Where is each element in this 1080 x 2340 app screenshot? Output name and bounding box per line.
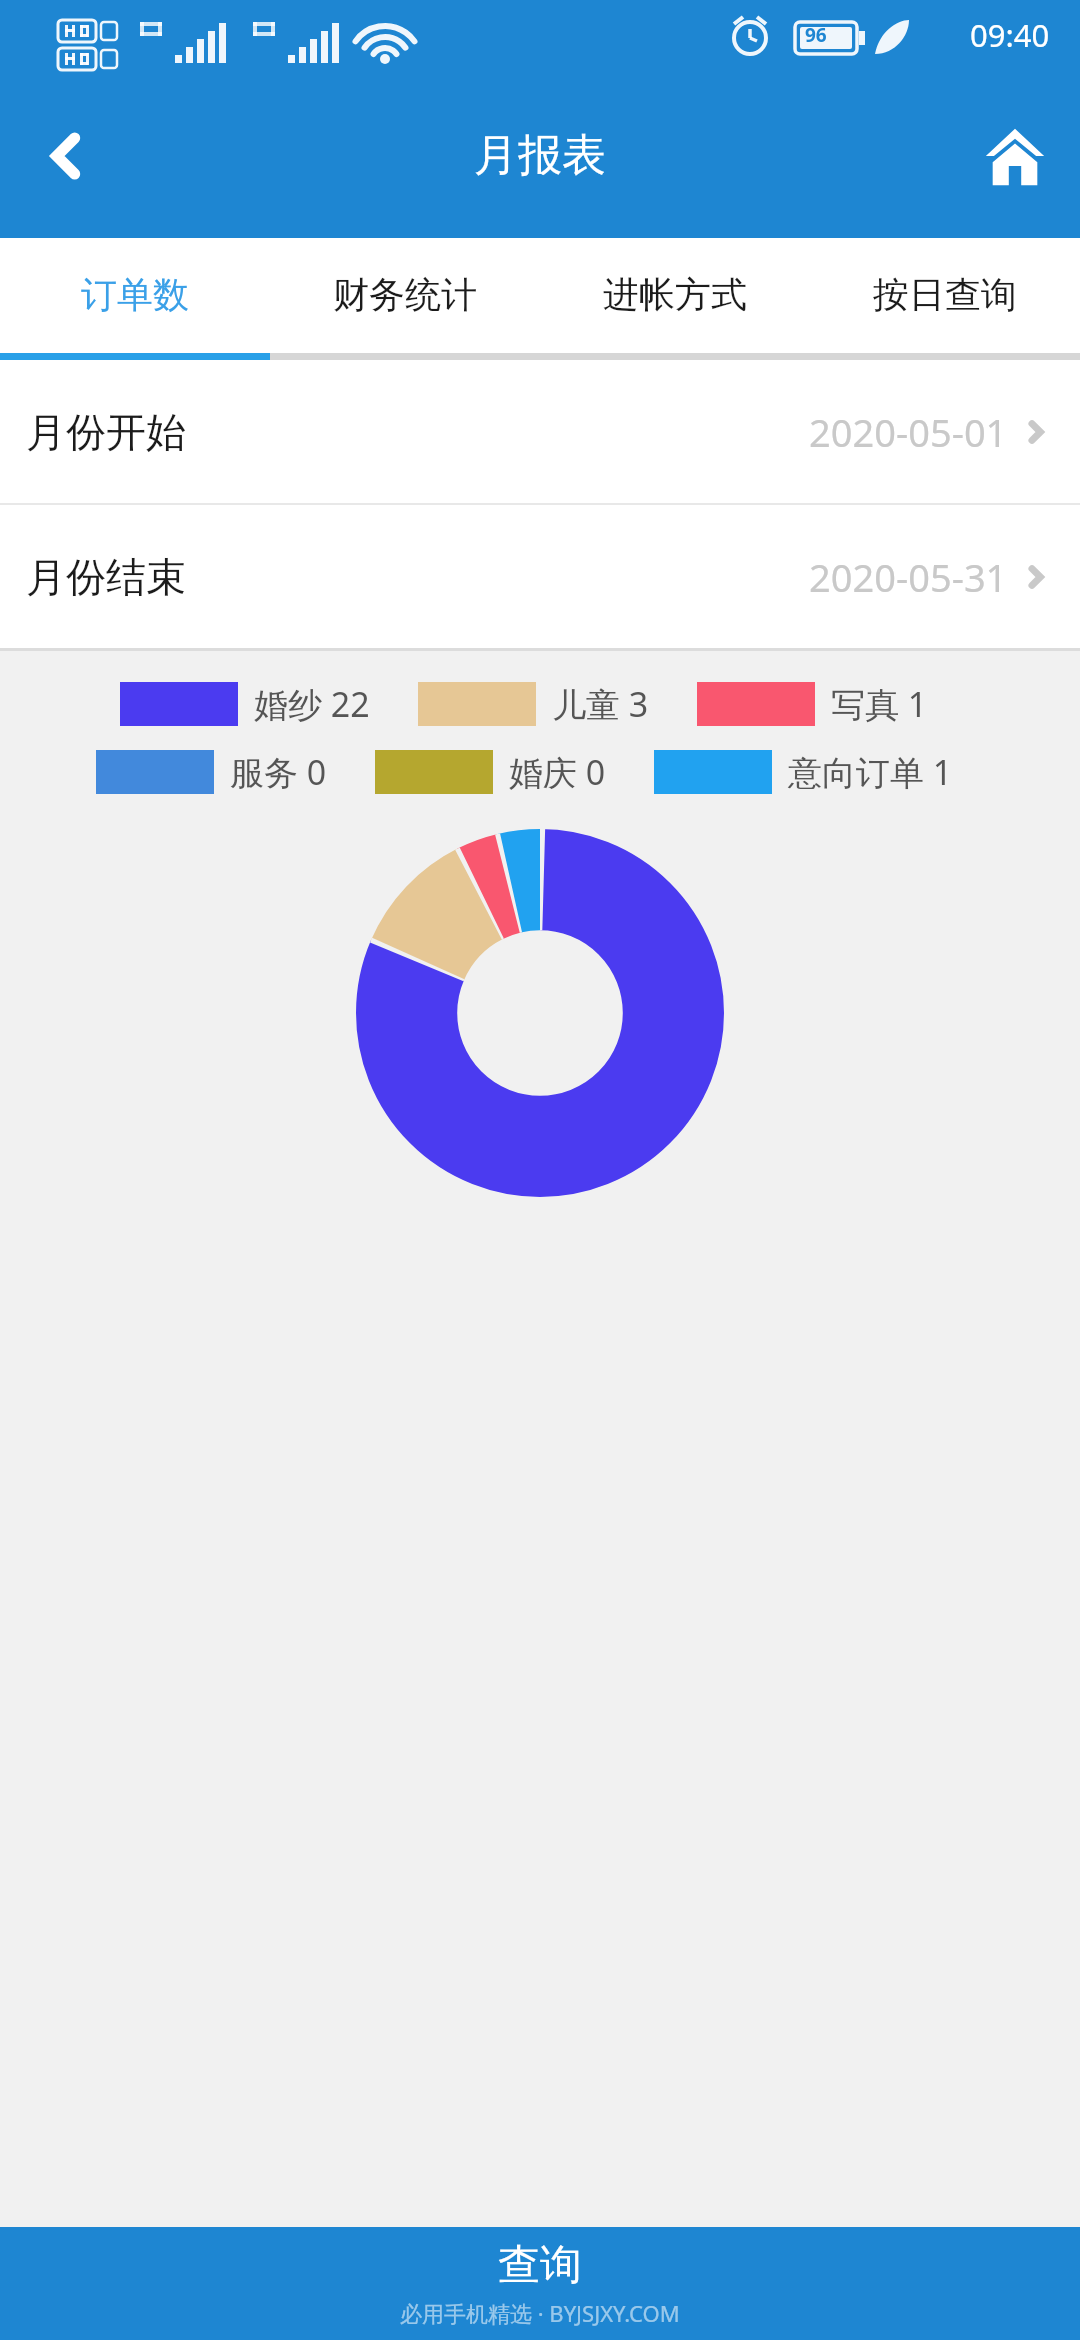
staticText: 婚纱 22 [254, 681, 370, 727]
staticText: 订单数 [81, 272, 189, 317]
button[interactable]: 进帐方式 [540, 238, 810, 350]
staticText: 按日查询 [873, 272, 1017, 317]
button[interactable]: 月份结束 [0, 505, 1080, 648]
button[interactable]: Home [950, 96, 1080, 216]
staticText: 月报表 [474, 128, 606, 183]
staticText: 查询 [498, 2239, 582, 2292]
staticText: 09:40 [970, 14, 1050, 56]
staticText: 儿童 3 [552, 681, 649, 727]
button[interactable]: 月份开始 [0, 360, 1080, 503]
button[interactable]: 订单数 [0, 238, 270, 350]
staticText: 96 [805, 22, 827, 48]
staticText: 写真 1 [831, 681, 928, 727]
staticText: 必用手机精选 · BYJSJXY.COM [400, 2298, 680, 2328]
staticText: 进帐方式 [603, 272, 747, 317]
button[interactable]: 查询 [0, 2227, 1080, 2340]
staticText: 2020-05-31 [809, 551, 1008, 603]
staticText: 月份开始 [26, 407, 186, 457]
button[interactable]: Back [0, 96, 120, 216]
staticText: 服务 0 [230, 749, 327, 795]
button[interactable]: 财务统计 [270, 238, 540, 350]
staticText: 意向订单 1 [788, 749, 953, 795]
staticText: 财务统计 [333, 272, 477, 317]
staticText: 2020-05-01 [809, 406, 1008, 458]
staticText: 婚庆 0 [509, 749, 606, 795]
button[interactable]: 按日查询 [810, 238, 1080, 350]
staticText: 月份结束 [26, 552, 186, 602]
